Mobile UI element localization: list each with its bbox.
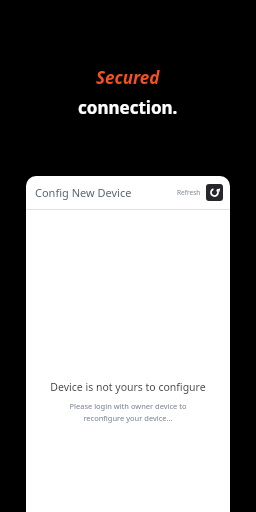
button[interactable]: Refresh [206, 184, 223, 201]
staticText: Config New Device [35, 185, 132, 200]
staticText: Secured [96, 66, 160, 89]
staticText: connection. [78, 96, 178, 119]
staticText: Device is not yours to configure [50, 380, 206, 394]
staticText: Refresh [177, 188, 201, 197]
button[interactable]: Refresh [177, 184, 223, 201]
staticText: reconfigure your device... [83, 413, 173, 423]
staticText: Please login with owner device to [69, 401, 187, 411]
